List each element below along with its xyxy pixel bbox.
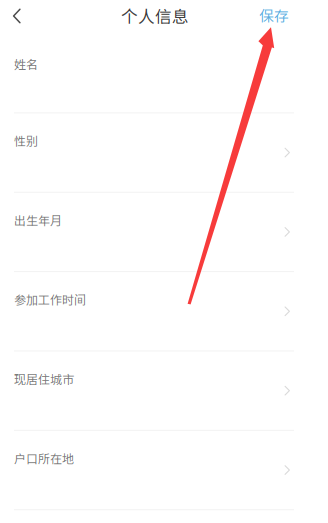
button[interactable]: 出生年月 — [0, 193, 328, 272]
button[interactable]: 参加工作时间 — [0, 272, 328, 351]
staticText: 个人信息 — [121, 3, 189, 27]
button[interactable]: 保存 — [249, 0, 328, 36]
staticText: 户口所在地 — [14, 449, 74, 467]
button[interactable]: 户口所在地 — [0, 431, 328, 510]
button[interactable]: 现居住城市 — [0, 351, 328, 431]
button[interactable]: 姓名 — [0, 34, 328, 113]
staticText: 保存 — [259, 4, 289, 26]
staticText: 性别 — [14, 132, 38, 149]
staticText: 现居住城市 — [14, 370, 74, 387]
staticText: 参加工作时间 — [14, 291, 86, 308]
staticText: 出生年月 — [14, 211, 62, 229]
button[interactable]: 性别 — [0, 113, 328, 193]
staticText: 姓名 — [14, 55, 38, 73]
button[interactable]: Back — [0, 0, 31, 34]
